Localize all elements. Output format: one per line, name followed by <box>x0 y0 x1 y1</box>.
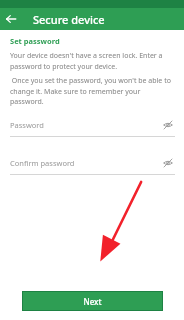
button[interactable]: Password <box>10 118 175 137</box>
button[interactable]: Show password <box>161 118 175 132</box>
staticText: Next <box>83 296 102 307</box>
staticText: Set password <box>10 36 60 46</box>
staticText: Your device doesn't have a screen lock. … <box>10 51 175 71</box>
button[interactable]: Confirm password <box>10 156 175 175</box>
button[interactable]: Show password <box>161 156 175 170</box>
staticText: Password <box>10 120 161 130</box>
button[interactable]: Back <box>0 8 22 30</box>
button[interactable]: Next <box>22 291 163 311</box>
staticText: Confirm password <box>10 158 161 168</box>
staticText: Once you set the password, you won't be … <box>10 76 175 106</box>
staticText: Secure device <box>33 12 105 27</box>
